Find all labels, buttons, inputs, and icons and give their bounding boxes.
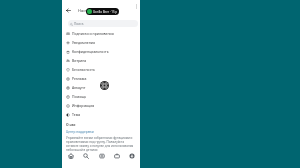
button[interactable]: home [64, 149, 77, 162]
staticText: Подписки и приложения [72, 31, 114, 36]
staticText: Уведомления [72, 40, 95, 45]
button[interactable]: person [125, 149, 138, 162]
button[interactable]: search [79, 149, 92, 162]
button[interactable]: Безопасность [62, 65, 140, 74]
button[interactable]: Тема [62, 110, 140, 119]
staticText: О нас [66, 122, 76, 127]
button[interactable]: Конфиденциальность [62, 47, 140, 56]
button[interactable]: Информация [62, 101, 140, 110]
button[interactable]: Apps [100, 81, 109, 90]
button[interactable]: cart [95, 149, 108, 162]
staticText: Помощь [72, 94, 87, 99]
button[interactable]: Витрина [62, 56, 140, 65]
button[interactable]: Подписки и приложения [62, 29, 140, 38]
staticText: Аккаунт [72, 85, 86, 90]
button[interactable]: Поиск [68, 20, 138, 27]
button[interactable]: Back [64, 6, 73, 15]
button[interactable]: bag [110, 149, 123, 162]
button[interactable]: Реклама [62, 74, 140, 83]
staticText: Информация [72, 103, 95, 108]
button[interactable]: Помощь [62, 92, 140, 101]
staticText: Управляйте всеми собранными функциями и … [66, 136, 137, 152]
staticText: Витрина [72, 58, 87, 63]
staticText: Поиск [74, 22, 84, 26]
staticText: Настройки [78, 8, 99, 13]
staticText: Конфиденциальность [72, 49, 109, 54]
staticText: Реклама [72, 76, 87, 81]
staticText: Тема [72, 112, 81, 117]
button[interactable]: Аккаунт [62, 83, 140, 92]
button[interactable]: Уведомления [62, 38, 140, 47]
staticText: Центр поддержки [66, 130, 94, 134]
staticText: Gorilla Beer · 15 р [93, 10, 118, 14]
staticText: Безопасность [72, 67, 95, 72]
